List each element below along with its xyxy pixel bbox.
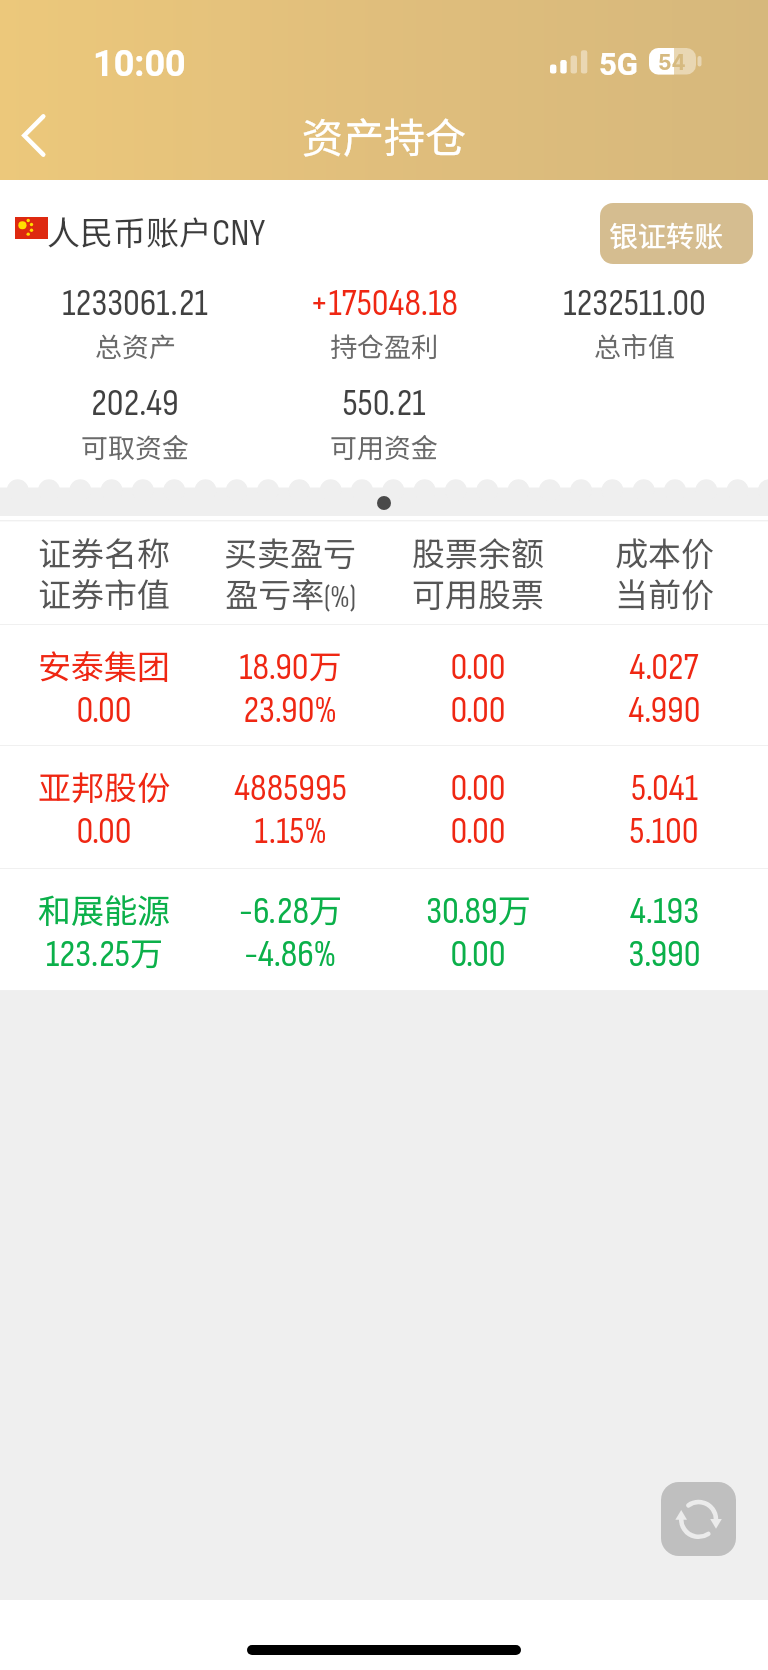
staticText: 可用股票	[412, 569, 544, 617]
staticText: 0.00	[450, 809, 506, 854]
staticText: 4.193	[630, 889, 699, 934]
staticText: 1.15%	[254, 809, 327, 854]
staticText: 0.00	[76, 688, 132, 733]
button[interactable]	[0, 868, 768, 990]
staticText: 0.00	[76, 809, 132, 854]
staticText: 4.027	[629, 645, 699, 690]
staticText: 可取资金	[81, 427, 189, 466]
staticText: 202.49	[91, 381, 179, 426]
staticText: 人民币账户CNY	[47, 207, 266, 257]
staticText: 5.041	[631, 766, 698, 811]
staticText: 4885995	[234, 766, 347, 811]
staticText: 股票余额	[412, 528, 544, 576]
staticText: 4.990	[628, 688, 701, 733]
staticText: 5.100	[629, 809, 699, 854]
staticText: 总资产	[95, 326, 176, 365]
staticText: 证券名称	[38, 528, 170, 576]
staticText: 30.89万	[426, 885, 531, 935]
staticText: 1233061.21	[62, 281, 208, 326]
staticText: 总市值	[594, 326, 675, 365]
staticText: 和展能源	[38, 885, 170, 933]
staticText: 成本价	[615, 528, 714, 576]
staticText: 123.25万	[46, 928, 163, 978]
staticText: 安泰集团	[38, 641, 170, 689]
staticText: 0.00	[450, 645, 506, 690]
staticText: 23.90%	[243, 688, 337, 733]
button[interactable]: Back	[0, 100, 70, 170]
staticText: 持仓盈利	[330, 326, 438, 365]
button[interactable]	[0, 624, 768, 745]
staticText: 0.00	[450, 932, 506, 977]
staticText: 银证转账	[609, 214, 724, 255]
staticText: -6.28万	[239, 885, 342, 935]
button[interactable]	[0, 745, 768, 868]
staticText: 5G	[599, 46, 638, 82]
staticText: 证券市值	[38, 569, 170, 617]
staticText: 盈亏率(%)	[225, 569, 356, 617]
button[interactable]: Refresh	[661, 1482, 736, 1556]
staticText: 550.21	[342, 381, 426, 426]
staticText: 10:00	[93, 43, 186, 85]
staticText: +175048.18	[310, 281, 458, 326]
button[interactable]: 银证转账	[600, 203, 753, 264]
staticText: 0.00	[450, 688, 506, 733]
staticText: 3.990	[628, 932, 701, 977]
staticText: 资产持仓	[302, 105, 466, 164]
staticText: 亚邦股份	[38, 762, 170, 810]
staticText: 54	[658, 50, 686, 75]
staticText: 买卖盈亏	[224, 528, 356, 576]
staticText: 可用资金	[330, 427, 438, 466]
staticText: -4.86%	[244, 932, 336, 977]
staticText: 1232511.00	[563, 281, 706, 326]
staticText: 0.00	[450, 766, 506, 811]
staticText: 18.90万	[239, 641, 342, 691]
staticText: 当前价	[615, 569, 714, 617]
